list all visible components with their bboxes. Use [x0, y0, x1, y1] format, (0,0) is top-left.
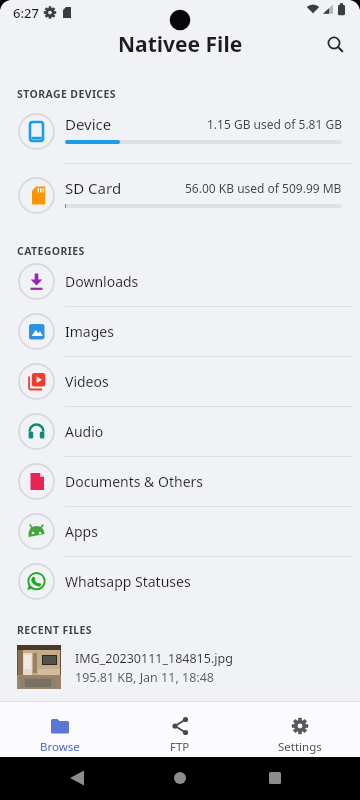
staticText: STORAGE DEVICES — [17, 87, 116, 101]
staticText: SD Card — [65, 178, 122, 198]
staticText: CATEGORIES — [17, 244, 85, 258]
staticText: Nativee File — [118, 30, 243, 59]
button[interactable]: Images — [0, 306, 360, 356]
button[interactable]: Whatsapp Statuses — [0, 556, 360, 606]
button[interactable]: IMG_20230111_184815.jpg — [0, 640, 360, 698]
button[interactable]: Documents & Others — [0, 456, 360, 506]
staticText: Images — [65, 322, 114, 341]
staticText: 6:27 — [13, 4, 39, 22]
staticText: Settings — [278, 739, 322, 755]
staticText: IMG_20230111_184815.jpg — [75, 650, 233, 667]
button[interactable] — [320, 30, 352, 62]
staticText: Videos — [65, 372, 109, 391]
button[interactable]: Browse — [0, 701, 120, 757]
button[interactable]: FTP — [120, 701, 240, 757]
button[interactable]: Videos — [0, 356, 360, 406]
staticText: Whatsapp Statuses — [65, 572, 191, 591]
staticText: Downloads — [65, 272, 139, 291]
staticText: FTP — [170, 739, 190, 755]
staticText: Audio — [65, 422, 104, 441]
button[interactable]: Audio — [0, 406, 360, 456]
button[interactable]: Device — [0, 103, 360, 163]
staticText: 1.15 GB used of 5.81 GB — [207, 116, 342, 132]
staticText: 195.81 KB, Jan 11, 18:48 — [75, 669, 214, 686]
button[interactable]: Apps — [0, 506, 360, 556]
staticText: Apps — [65, 522, 98, 541]
button[interactable]: Downloads — [0, 256, 360, 306]
button[interactable]: Settings — [240, 701, 360, 757]
staticText: Device — [65, 114, 112, 134]
staticText: Browse — [40, 739, 80, 755]
button[interactable]: SD Card — [0, 167, 360, 227]
staticText: Documents & Others — [65, 472, 204, 491]
staticText: 56.00 KB used of 509.99 MB — [185, 180, 342, 196]
staticText: RECENT FILES — [17, 623, 92, 637]
